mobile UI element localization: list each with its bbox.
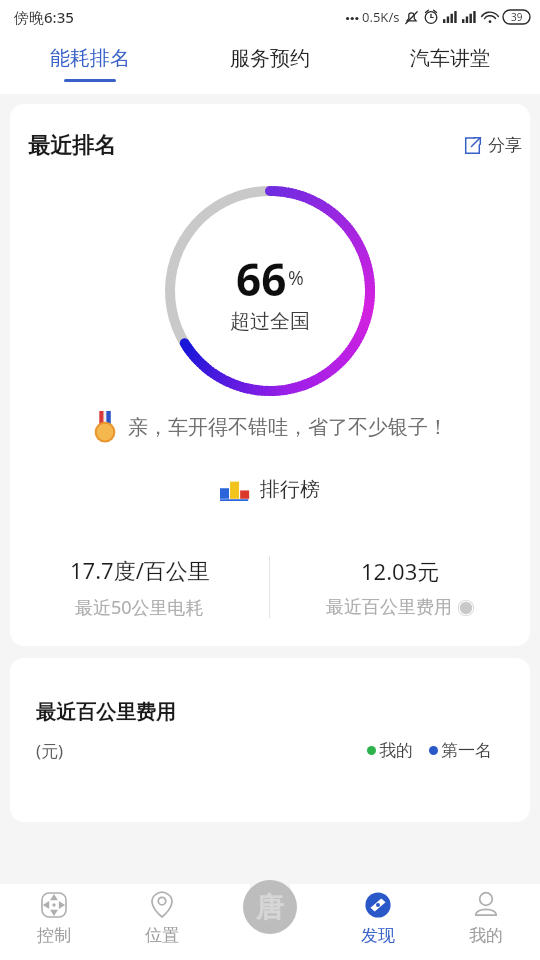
button[interactable]: 服务预约 [180, 34, 360, 94]
button[interactable]: 排行榜 [190, 465, 350, 514]
staticText: 发现 [361, 925, 395, 946]
staticText: 17.7度/百公里 [70, 555, 210, 585]
staticText: 唐 [256, 890, 284, 925]
staticText: 控制 [37, 925, 71, 946]
staticText: 第一名 [441, 740, 492, 761]
staticText: 排行榜 [260, 477, 320, 502]
staticText: 亲，车开得不错哇，省了不少银子！ [128, 415, 448, 440]
staticText: 超过全国 [230, 309, 310, 334]
other: Help [458, 600, 474, 616]
button[interactable]: 位置 [108, 878, 216, 960]
staticText: 我的 [379, 740, 413, 761]
staticText: 0.5K/s [362, 8, 400, 26]
other: Share [464, 137, 481, 154]
staticText: 汽车讲堂 [410, 46, 490, 71]
staticText: (元) [36, 739, 64, 762]
staticText: 最近50公里电耗 [75, 595, 204, 620]
staticText: 傍晚6:35 [14, 7, 74, 27]
staticText: 最近百公里费用 [326, 596, 452, 619]
staticText: 位置 [145, 925, 179, 946]
staticText: 66 [236, 249, 287, 309]
button[interactable]: 唐 [243, 880, 297, 934]
button[interactable]: 17.7度/百公里 [10, 542, 269, 632]
button[interactable]: 12.03元 [270, 542, 530, 632]
staticText: 最近百公里费用 [36, 700, 176, 725]
button[interactable]: Share [448, 126, 530, 165]
staticText: 12.03元 [361, 556, 440, 586]
staticText: 我的 [469, 925, 503, 946]
staticText: 服务预约 [230, 46, 310, 71]
button[interactable]: 控制 [0, 878, 108, 960]
button[interactable]: 发现 [324, 878, 432, 960]
staticText: 能耗排名 [50, 46, 130, 71]
staticText: % [288, 265, 304, 291]
staticText: 39 [511, 10, 523, 24]
staticText: 最近排名 [28, 132, 116, 160]
button[interactable]: 我的 [432, 878, 540, 960]
button[interactable]: 能耗排名 [0, 34, 180, 94]
staticText: 分享 [488, 135, 522, 156]
button[interactable]: 汽车讲堂 [360, 34, 540, 94]
